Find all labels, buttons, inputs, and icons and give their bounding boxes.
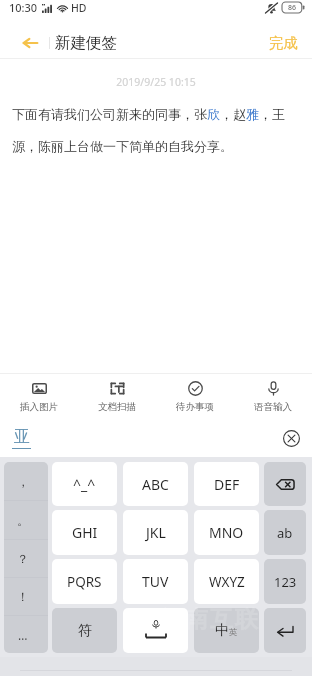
- staticText: 英: [229, 627, 238, 638]
- button[interactable]: 亚: [12, 427, 31, 449]
- staticText: 互: [210, 605, 233, 634]
- button[interactable]: 完成: [269, 26, 298, 59]
- button[interactable]: ，: [4, 462, 48, 500]
- button[interactable]: ？: [4, 540, 48, 577]
- staticText: 新建便签: [55, 33, 117, 53]
- button[interactable]: PQRS: [52, 559, 117, 604]
- button[interactable]: ABC: [123, 462, 188, 506]
- staticText: 亚: [14, 427, 30, 447]
- staticText: 南: [185, 605, 208, 634]
- button[interactable]: ！: [4, 578, 48, 615]
- button[interactable]: Back: [0, 26, 49, 59]
- button[interactable]: WXYZ: [194, 559, 259, 604]
- button[interactable]: 符: [52, 608, 117, 653]
- staticText: GHI: [72, 523, 98, 542]
- staticText: WXYZ: [209, 573, 245, 591]
- staticText: …: [18, 627, 28, 643]
- button[interactable]: ab: [264, 510, 306, 555]
- button[interactable]: 123: [264, 559, 306, 604]
- staticText: PQRS: [67, 573, 102, 591]
- button[interactable]: MNO: [194, 510, 259, 555]
- staticText: ab: [277, 524, 293, 542]
- button[interactable]: ^_^: [52, 462, 117, 506]
- staticText: ？: [17, 551, 29, 566]
- button[interactable]: JKL: [123, 510, 188, 555]
- staticText: JKL: [146, 523, 166, 542]
- staticText: 联: [235, 605, 258, 634]
- staticText: 插入图片: [20, 401, 58, 413]
- staticText: 语音输入: [254, 401, 292, 413]
- button[interactable]: TUV: [123, 559, 188, 604]
- button[interactable]: 插入图片: [0, 374, 78, 419]
- staticText: 。: [17, 513, 29, 528]
- button[interactable]: 。: [4, 501, 48, 539]
- staticText: HD: [71, 1, 87, 15]
- staticText: 文档扫描: [98, 401, 136, 413]
- staticText: 2019/9/25 10:15: [0, 75, 312, 89]
- button[interactable]: 待办事项: [156, 374, 234, 419]
- staticText: 中: [215, 622, 229, 640]
- button[interactable]: [264, 462, 306, 506]
- staticText: MNO: [209, 523, 244, 542]
- staticText: 123: [274, 573, 297, 591]
- button[interactable]: …: [4, 616, 48, 653]
- button[interactable]: 中: [194, 608, 259, 653]
- button[interactable]: 文档扫描: [78, 374, 156, 419]
- staticText: 下面有请我们公司新来的同事，张欣，赵雅，王源，陈丽上台做一下简单的自我分享。: [12, 106, 302, 155]
- staticText: ，: [17, 474, 29, 489]
- staticText: 待办事项: [176, 401, 214, 413]
- button[interactable]: Close keyboard: [280, 427, 302, 449]
- button[interactable]: [123, 608, 188, 653]
- staticText: 符: [78, 622, 92, 640]
- staticText: ABC: [142, 475, 169, 494]
- button[interactable]: GHI: [52, 510, 117, 555]
- button[interactable]: DEF: [194, 462, 259, 506]
- staticText: TUV: [142, 572, 169, 591]
- staticText: 完成: [269, 34, 298, 52]
- staticText: ！: [17, 589, 29, 604]
- button[interactable]: 语音输入: [234, 374, 312, 419]
- button[interactable]: [264, 608, 306, 653]
- staticText: 闽: [160, 605, 183, 634]
- staticText: DEF: [214, 475, 240, 494]
- staticText: 86: [288, 3, 297, 13]
- staticText: 10:30: [9, 0, 38, 15]
- staticText: ^_^: [73, 475, 96, 494]
